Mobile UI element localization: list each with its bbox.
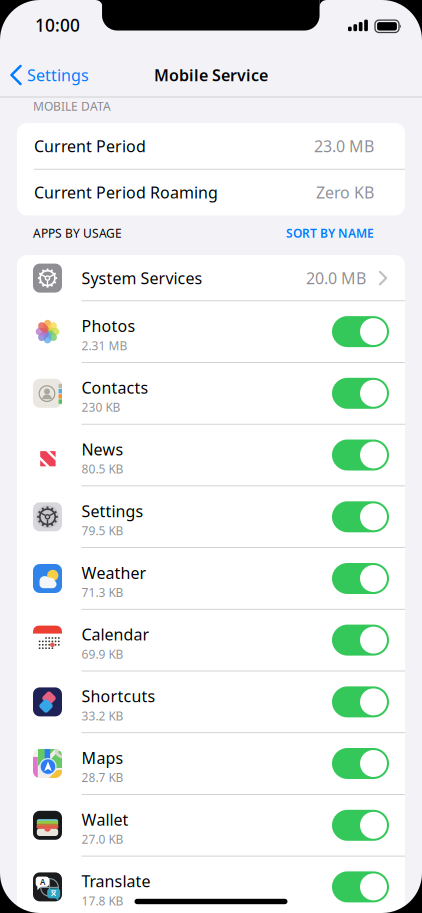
staticText: 80.5 KB [81, 461, 123, 477]
staticText: APPS BY USAGE [33, 225, 122, 241]
staticText: A [40, 877, 45, 887]
staticText: 17.8 KB [81, 893, 123, 909]
staticText: 20.0 MB [306, 267, 366, 289]
staticText: Photos [81, 315, 135, 336]
staticText: Contacts [81, 377, 148, 398]
button[interactable]: News [332, 439, 389, 470]
button[interactable]: Weather [332, 563, 389, 594]
staticText: News [81, 439, 123, 460]
staticText: 69.9 KB [81, 646, 123, 662]
button[interactable]: Photos [332, 316, 389, 347]
staticText: Current Period [34, 135, 146, 157]
button[interactable]: Contacts [332, 378, 389, 409]
staticText: 10:00 [35, 13, 80, 36]
staticText: 79.5 KB [81, 523, 123, 539]
staticText: Translate [81, 870, 150, 892]
staticText: 23.0 MB [314, 135, 374, 157]
staticText: Current Period Roaming [34, 182, 218, 203]
staticText: Maps [81, 747, 123, 768]
staticText: 230 KB [81, 399, 120, 415]
staticText: 2.31 MB [81, 337, 127, 353]
button[interactable]: Maps [332, 748, 389, 779]
staticText: 71.3 KB [81, 584, 123, 600]
button[interactable]: System Services [17, 255, 405, 301]
staticText: System Services [81, 267, 202, 289]
button[interactable]: Translate [332, 871, 389, 902]
staticText: 28.7 KB [81, 769, 123, 785]
staticText: Settings [27, 64, 89, 86]
staticText: Shortcuts [81, 685, 155, 707]
staticText: Zero KB [316, 182, 374, 203]
staticText: Weather [81, 562, 146, 583]
button[interactable]: SORT BY NAME [244, 225, 374, 241]
staticText: Calendar [81, 624, 149, 645]
staticText: SORT BY NAME [286, 225, 374, 241]
staticText: Settings [81, 500, 143, 522]
button[interactable]: Settings [332, 501, 389, 532]
staticText: 27.0 KB [81, 831, 123, 847]
button[interactable]: Wallet [332, 810, 389, 841]
button[interactable]: Calendar [332, 625, 389, 656]
button[interactable]: Back [0, 55, 130, 95]
button[interactable]: Shortcuts [332, 686, 389, 717]
staticText: 33.2 KB [81, 708, 123, 724]
staticText: Mobile Service [154, 64, 268, 86]
staticText: Wallet [81, 809, 128, 830]
staticText: MOBILE DATA [33, 98, 111, 114]
